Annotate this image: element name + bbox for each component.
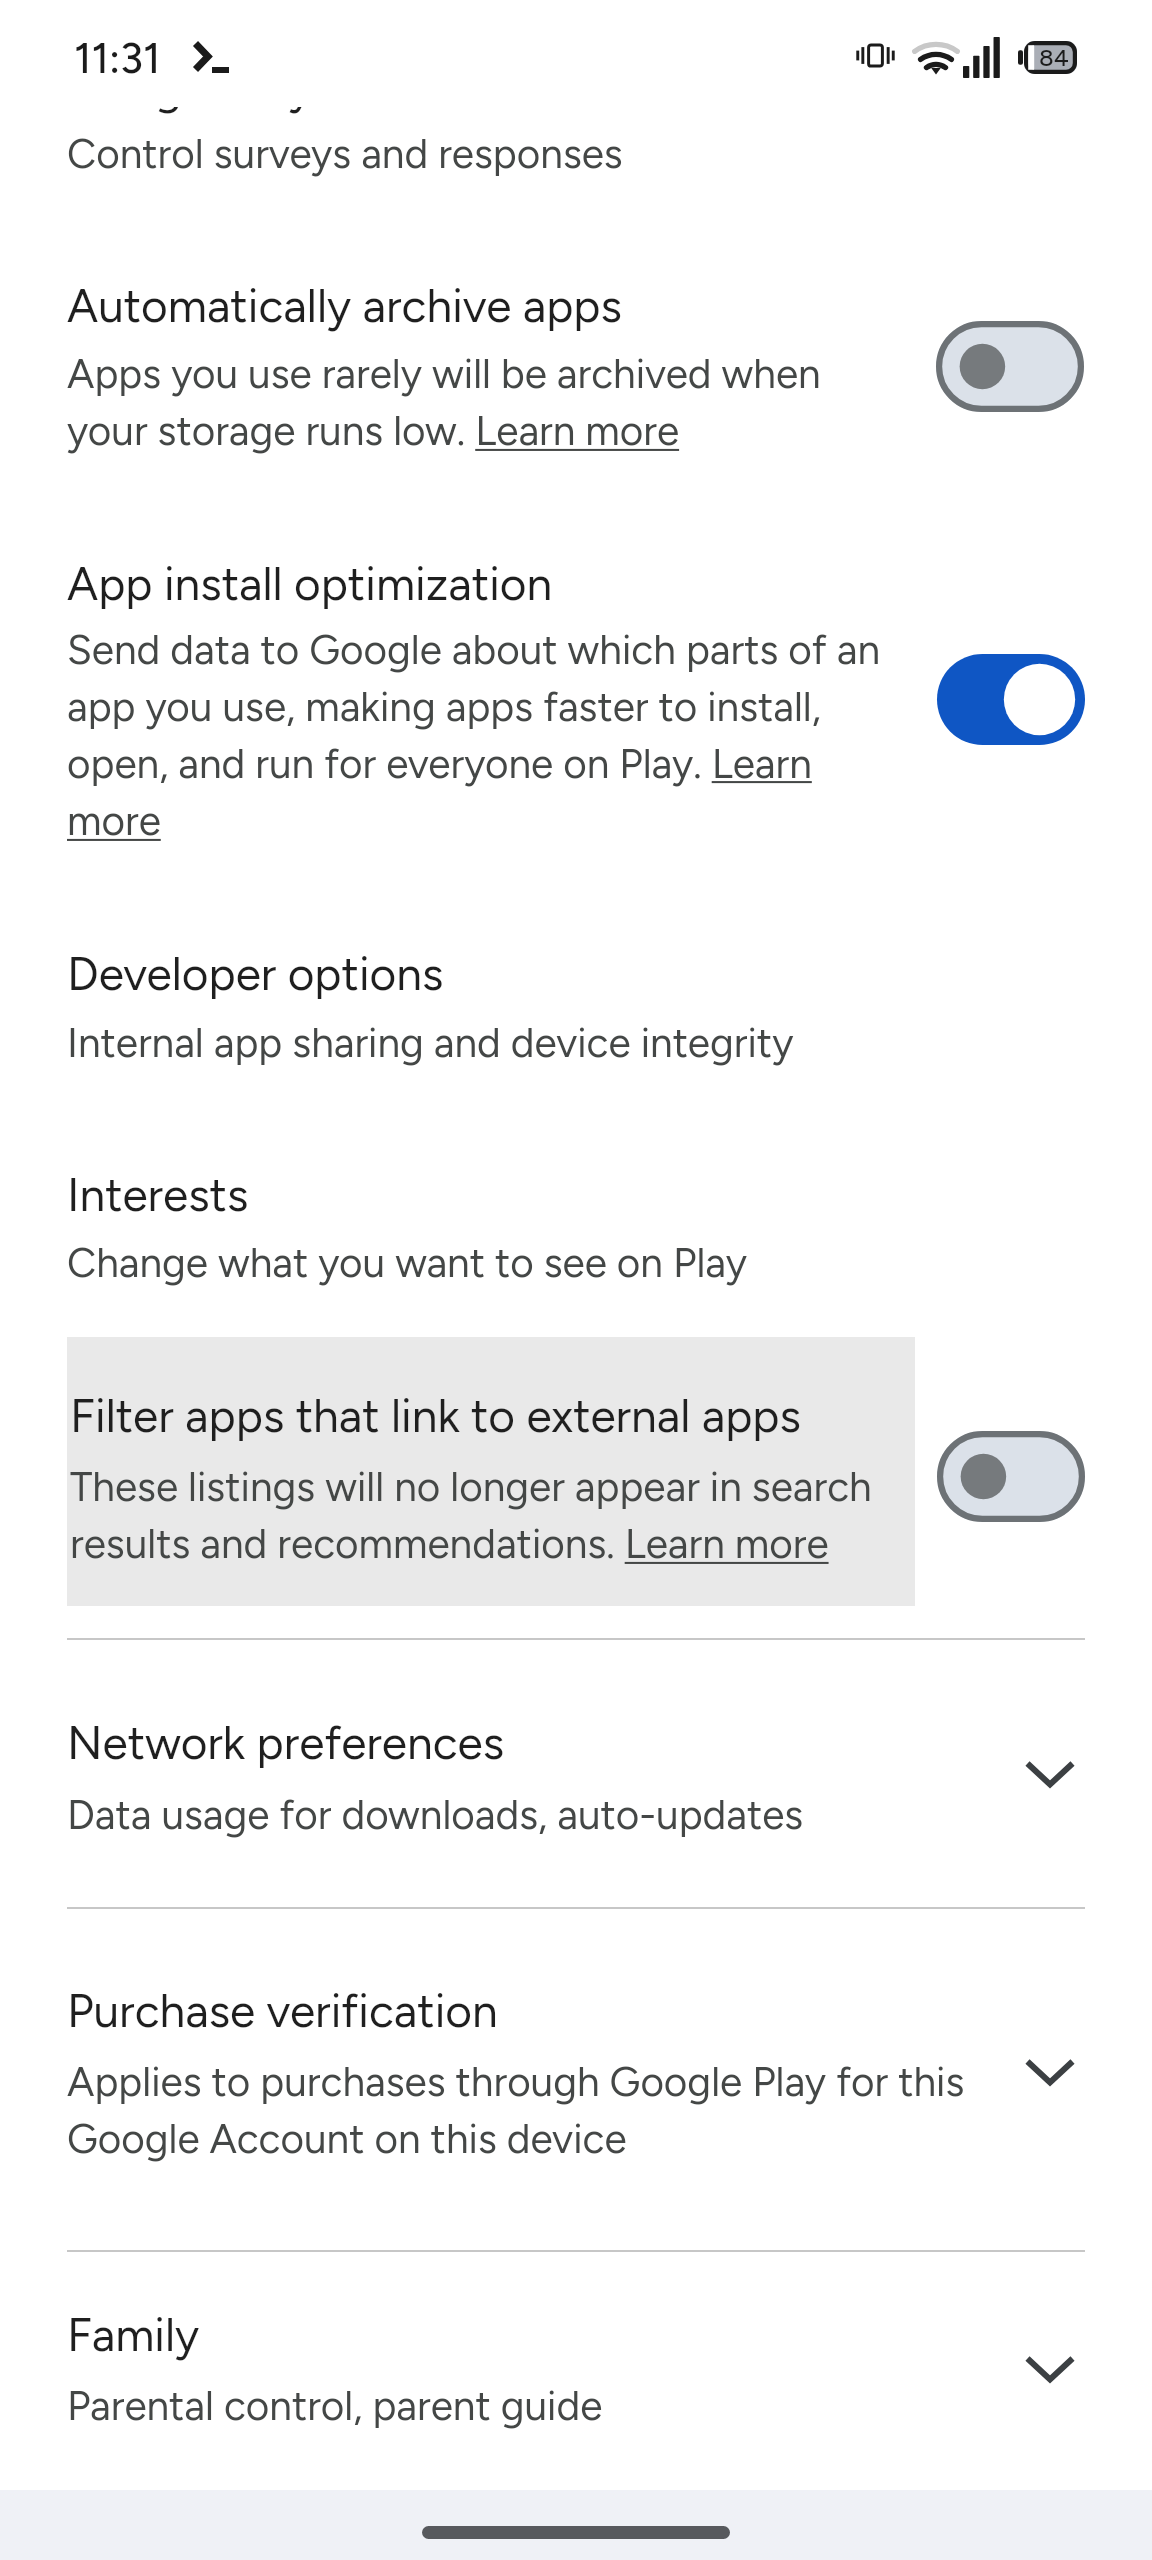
button[interactable]: Toggle off	[936, 321, 1084, 412]
button[interactable]: Toggle on	[937, 654, 1085, 745]
button[interactable]: Expand	[1014, 2036, 1086, 2108]
staticText: 84	[1039, 43, 1069, 72]
button[interactable]: Developer options	[0, 923, 1152, 1093]
staticText: Change what you want to see on Play	[67, 1239, 1067, 1288]
staticText: Automatically archive apps	[67, 278, 622, 333]
staticText: Apps you use rarely will be archived whe…	[67, 350, 867, 456]
staticText: Internal app sharing and device integrit…	[67, 1019, 1067, 1068]
staticText: These listings will no longer appear in …	[70, 1463, 898, 1569]
staticText: Control surveys and responses	[67, 130, 1067, 179]
button[interactable]: Filter apps that link to external apps	[0, 1337, 1152, 1606]
staticText: Family	[67, 2307, 200, 2362]
staticText: Google Play	[67, 60, 313, 115]
staticText: 11:31	[74, 33, 161, 83]
staticText: Send data to Google about which parts of…	[67, 626, 895, 846]
button[interactable]: Interests	[0, 1145, 1152, 1315]
staticText: Parental control, parent guide	[67, 2382, 1067, 2431]
button[interactable]: Expand	[1014, 1738, 1086, 1810]
button[interactable]: Toggle off	[937, 1431, 1085, 1522]
staticText: Interests	[67, 1167, 249, 1222]
button[interactable]: Network preferences	[0, 1692, 1152, 1877]
button[interactable]: Automatically archive apps	[0, 255, 1152, 485]
staticText: Developer options	[67, 946, 444, 1001]
button[interactable]: Control surveys and responses	[0, 96, 1152, 226]
staticText: Applies to purchases through Google Play…	[67, 2058, 987, 2164]
staticText: Network preferences	[67, 1715, 505, 1770]
button[interactable]: App install optimization	[0, 533, 1152, 878]
staticText: Data usage for downloads, auto-updates	[67, 1791, 1067, 1840]
button[interactable]: Purchase verification	[0, 1961, 1152, 2204]
staticText: Filter apps that link to external apps	[70, 1388, 801, 1443]
staticText: App install optimization	[67, 556, 553, 611]
button[interactable]: Family	[0, 2285, 1152, 2475]
staticText: Purchase verification	[67, 1983, 498, 2038]
button[interactable]: Expand	[1014, 2333, 1086, 2405]
